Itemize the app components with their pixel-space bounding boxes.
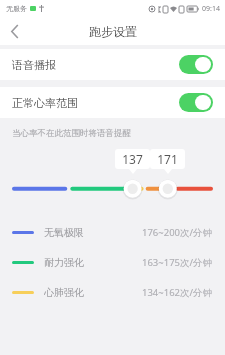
- staticText: 跑步设置: [89, 24, 137, 39]
- staticText: 耐力强化: [44, 256, 84, 269]
- button[interactable]: 语音播报: [0, 49, 225, 80]
- button[interactable]: 心肺强化: [0, 277, 225, 307]
- staticText: 171: [157, 151, 178, 167]
- button[interactable]: Heart rate range slider: [0, 177, 225, 203]
- button[interactable]: Back: [0, 17, 30, 45]
- staticText: 134~162次/分钟: [142, 286, 213, 299]
- staticText: 09:14: [202, 4, 220, 14]
- button[interactable]: 耐力强化: [0, 247, 225, 277]
- button[interactable]: 正常心率范围: [0, 87, 225, 118]
- staticText: 163~175次/分钟: [142, 256, 213, 269]
- button[interactable]: 无氧极限: [0, 217, 225, 247]
- staticText: 176~200次/分钟: [142, 226, 213, 239]
- staticText: 语音播报: [12, 58, 56, 72]
- staticText: 正常心率范围: [12, 96, 78, 110]
- staticText: 137: [122, 151, 143, 167]
- staticText: 无服务: [6, 4, 27, 13]
- staticText: 心肺强化: [44, 286, 84, 299]
- staticText: 无氧极限: [44, 226, 84, 239]
- staticText: 当心率不在此范围时将语音提醒: [12, 128, 131, 139]
